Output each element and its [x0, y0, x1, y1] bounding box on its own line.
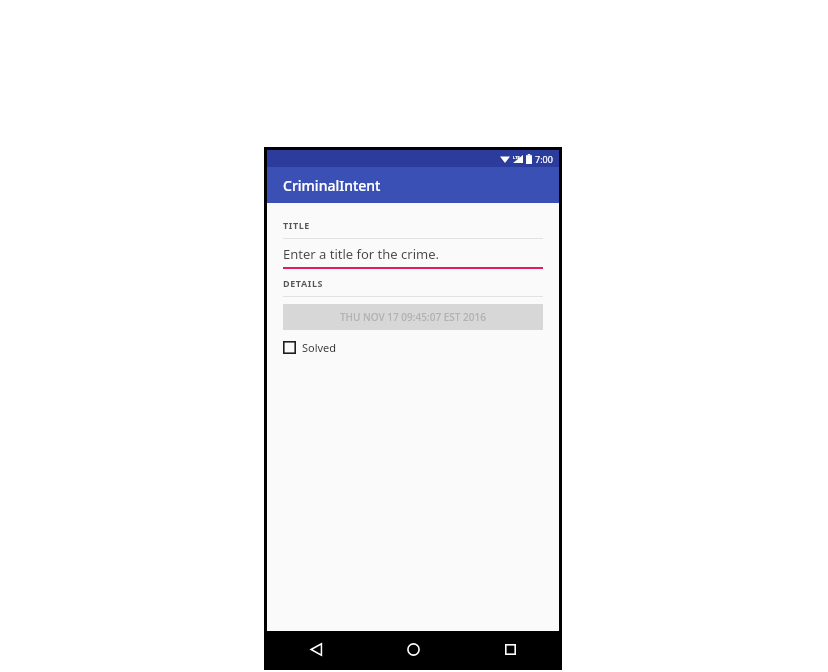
staticText: LTE	[513, 155, 520, 160]
staticText: Enter a title for the crime.	[283, 245, 439, 263]
staticText: TITLE	[283, 219, 310, 231]
staticText: DETAILS	[283, 277, 324, 289]
button[interactable]: Solved	[283, 338, 337, 357]
button[interactable]: Back	[267, 631, 365, 667]
button[interactable]: Recent apps	[462, 631, 559, 667]
staticText: Solved	[302, 340, 337, 355]
button[interactable]: Enter a title for the crime.	[283, 239, 543, 267]
staticText: CriminalIntent	[283, 176, 381, 195]
staticText: THU NOV 17 09:45:07 EST 2016	[340, 310, 486, 324]
button[interactable]: THU NOV 17 09:45:07 EST 2016	[283, 304, 543, 330]
staticText: 7:00	[535, 153, 553, 165]
button[interactable]: Home	[365, 631, 462, 667]
